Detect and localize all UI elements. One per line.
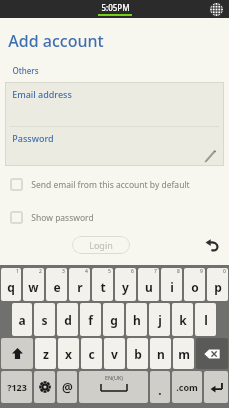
- button[interactable]: Login: [72, 236, 130, 254]
- button[interactable]: l: [195, 303, 216, 336]
- staticText: 1: [16, 268, 19, 275]
- staticText: p: [214, 279, 222, 295]
- staticText: 6: [131, 268, 134, 275]
- button[interactable]: ?123: [1, 371, 32, 403]
- staticText: Password: [12, 132, 54, 144]
- button[interactable]: 4: [69, 268, 90, 301]
- staticText: w: [28, 279, 39, 295]
- staticText: e: [53, 279, 61, 295]
- staticText: l: [204, 312, 208, 328]
- staticText: v: [111, 346, 118, 362]
- button[interactable]: h: [126, 303, 147, 336]
- button[interactable]: m: [173, 338, 194, 369]
- staticText: t: [100, 279, 106, 295]
- staticText: ?123: [7, 381, 27, 393]
- staticText: .com: [176, 381, 198, 393]
- button[interactable]: 1: [1, 268, 21, 301]
- button[interactable]: n: [150, 338, 171, 369]
- staticText: Email address: [12, 88, 72, 100]
- staticText: h: [133, 312, 141, 328]
- button[interactable]: 3: [46, 268, 67, 301]
- button[interactable]: 5: [92, 268, 113, 301]
- button[interactable]: 9: [184, 268, 205, 301]
- staticText: j: [158, 312, 162, 328]
- staticText: 2: [39, 268, 42, 275]
- staticText: x: [65, 346, 72, 362]
- staticText: Login: [89, 239, 113, 251]
- button[interactable]: Shift: [1, 338, 33, 369]
- staticText: u: [145, 279, 153, 295]
- button[interactable]: d: [57, 303, 78, 336]
- staticText: g: [110, 312, 118, 328]
- button[interactable]: x: [58, 338, 79, 369]
- button[interactable]: Send email from this account by default: [10, 178, 219, 191]
- staticText: 3: [62, 268, 65, 275]
- button[interactable]: 7: [138, 268, 159, 301]
- button[interactable]: Edit: [204, 150, 217, 163]
- button[interactable]: 8: [161, 268, 182, 301]
- button[interactable]: b: [127, 338, 148, 369]
- button[interactable]: s: [34, 303, 55, 336]
- button[interactable]: @: [57, 371, 77, 403]
- button[interactable]: Back: [203, 236, 221, 254]
- staticText: 8: [177, 268, 180, 275]
- staticText: .: [158, 382, 162, 398]
- button[interactable]: c: [81, 338, 102, 369]
- staticText: Others: [12, 65, 39, 76]
- staticText: y: [122, 279, 129, 295]
- button[interactable]: Backspace: [196, 338, 228, 369]
- staticText: i: [170, 279, 174, 295]
- button[interactable]: Email address: [5, 82, 224, 127]
- button[interactable]: .: [150, 371, 170, 403]
- button[interactable]: Show password: [10, 211, 219, 224]
- staticText: 0: [223, 268, 226, 275]
- staticText: Add account: [8, 30, 104, 52]
- button[interactable]: v: [104, 338, 125, 369]
- staticText: 5:05PM: [101, 2, 130, 13]
- button[interactable]: Settings: [34, 371, 55, 403]
- staticText: 7: [154, 268, 157, 275]
- button[interactable]: 0: [207, 268, 228, 301]
- staticText: c: [88, 346, 95, 362]
- staticText: q: [7, 279, 15, 295]
- staticText: f: [88, 312, 93, 328]
- button[interactable]: f: [80, 303, 101, 336]
- button[interactable]: j: [149, 303, 170, 336]
- staticText: z: [43, 346, 49, 362]
- staticText: m: [178, 346, 190, 362]
- button[interactable]: Password: [5, 127, 224, 166]
- staticText: 9: [200, 268, 203, 275]
- button[interactable]: .com: [172, 371, 202, 403]
- staticText: Send email from this account by default: [31, 179, 190, 191]
- button[interactable]: Enter: [204, 371, 228, 403]
- staticText: Show password: [31, 212, 94, 224]
- staticText: s: [41, 312, 48, 328]
- button[interactable]: Space: [79, 371, 148, 403]
- staticText: EN(UK): [105, 374, 123, 381]
- staticText: o: [191, 279, 199, 295]
- staticText: k: [179, 312, 187, 328]
- button[interactable]: 6: [115, 268, 136, 301]
- button[interactable]: Language: [209, 2, 224, 17]
- staticText: r: [77, 279, 83, 295]
- staticText: 4: [85, 268, 88, 275]
- staticText: b: [134, 346, 142, 362]
- staticText: 5: [108, 268, 111, 275]
- button[interactable]: a: [12, 303, 32, 336]
- button[interactable]: z: [35, 338, 56, 369]
- button[interactable]: k: [172, 303, 193, 336]
- staticText: @: [62, 379, 73, 395]
- button[interactable]: g: [103, 303, 124, 336]
- button[interactable]: 2: [23, 268, 44, 301]
- staticText: n: [157, 346, 165, 362]
- staticText: d: [64, 312, 72, 328]
- staticText: a: [18, 312, 26, 328]
